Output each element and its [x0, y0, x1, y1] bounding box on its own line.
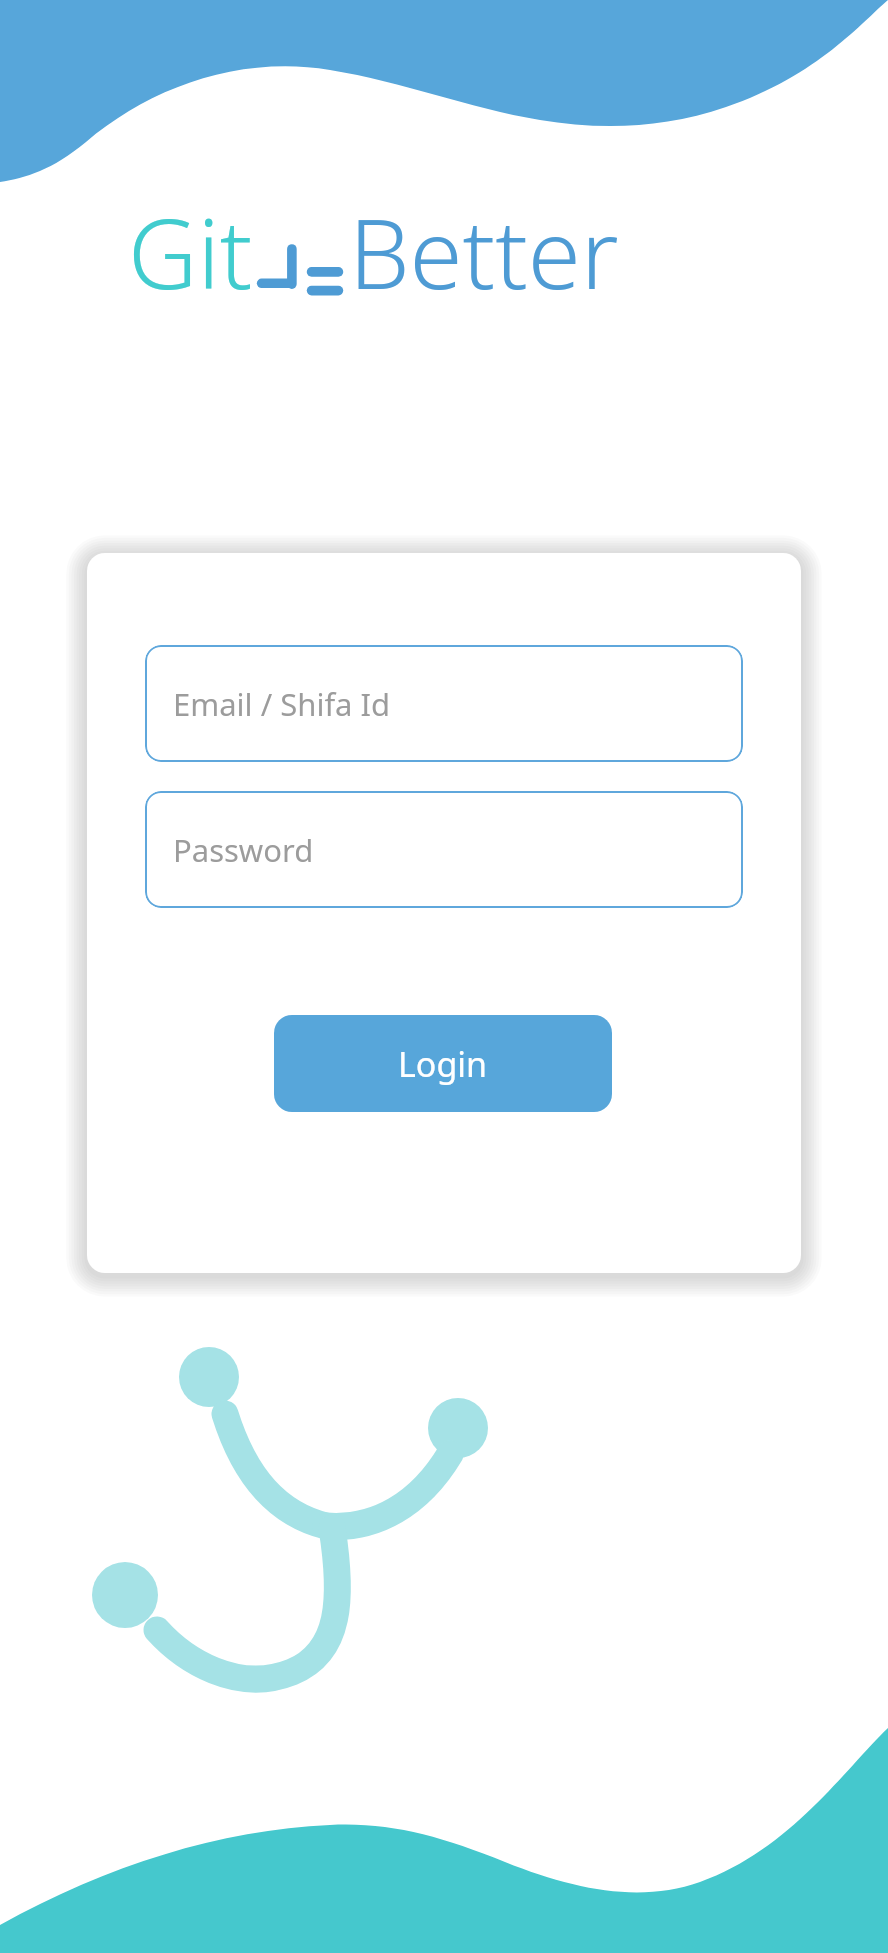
button[interactable]: Email / Shifa Id — [145, 645, 743, 762]
staticText: Better — [349, 186, 619, 317]
staticText: Password — [173, 829, 314, 871]
staticText: Login — [398, 1041, 488, 1087]
other: Stethoscope illustration — [60, 1330, 460, 1730]
staticText: Git — [128, 186, 253, 317]
button[interactable]: Password — [145, 791, 743, 908]
button[interactable]: Login — [274, 1015, 612, 1112]
staticText: Email / Shifa Id — [173, 683, 391, 725]
